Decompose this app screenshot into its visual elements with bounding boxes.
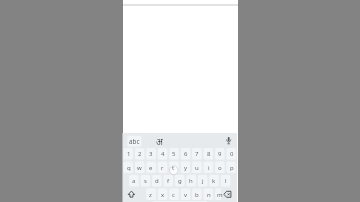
staticText: m xyxy=(217,191,223,199)
staticText: v xyxy=(184,191,188,199)
staticText: h xyxy=(189,177,193,185)
button[interactable] xyxy=(123,189,138,200)
staticText: abc xyxy=(129,137,140,146)
staticText: g xyxy=(178,177,182,185)
button[interactable]: h xyxy=(185,175,196,186)
button[interactable]: p xyxy=(226,162,237,173)
staticText: l xyxy=(225,177,227,185)
button[interactable]: l xyxy=(220,175,231,186)
button[interactable]: z xyxy=(145,189,156,200)
staticText: f xyxy=(167,177,170,185)
staticText: e xyxy=(149,164,153,172)
button[interactable]: y xyxy=(180,162,191,173)
button[interactable]: w xyxy=(134,162,145,173)
staticText: j xyxy=(202,177,204,185)
staticText: y xyxy=(184,164,188,172)
button[interactable]: b xyxy=(191,189,202,200)
button[interactable]: अ xyxy=(152,134,166,147)
button[interactable]: s xyxy=(140,175,151,186)
button[interactable]: f xyxy=(163,175,174,186)
button[interactable]: abc xyxy=(127,136,141,147)
button[interactable]: o xyxy=(214,162,225,173)
button[interactable]: 3 xyxy=(145,148,156,159)
staticText: अ xyxy=(156,135,163,147)
staticText: s xyxy=(144,177,147,185)
button[interactable]: 7 xyxy=(191,148,202,159)
staticText: 7 xyxy=(195,150,199,158)
staticText: i xyxy=(208,164,210,172)
button[interactable]: g xyxy=(174,175,185,186)
button[interactable]: e xyxy=(145,162,156,173)
button[interactable]: 6 xyxy=(180,148,191,159)
button[interactable]: 5 xyxy=(168,148,179,159)
staticText: b xyxy=(195,191,199,199)
button[interactable]: 9 xyxy=(214,148,225,159)
staticText: 8 xyxy=(207,150,211,158)
staticText: t xyxy=(172,164,175,172)
button[interactable]: q xyxy=(123,162,134,173)
staticText: a xyxy=(132,177,136,185)
staticText: x xyxy=(161,191,165,199)
button[interactable]: 0 xyxy=(226,148,237,159)
staticText: o xyxy=(218,164,222,172)
button[interactable]: 8 xyxy=(203,148,214,159)
staticText: k xyxy=(212,177,216,185)
button[interactable]: k xyxy=(208,175,219,186)
button[interactable]: d xyxy=(151,175,162,186)
button[interactable]: v xyxy=(180,189,191,200)
button[interactable]: m xyxy=(214,189,225,200)
button[interactable]: n xyxy=(203,189,214,200)
staticText: q xyxy=(127,164,131,172)
button[interactable]: c xyxy=(168,189,179,200)
staticText: p xyxy=(230,164,234,172)
staticText: 3 xyxy=(149,150,153,158)
button[interactable]: i xyxy=(203,162,214,173)
staticText: n xyxy=(207,191,211,199)
staticText: 5 xyxy=(172,150,176,158)
button[interactable]: a xyxy=(128,175,139,186)
staticText: w xyxy=(137,164,142,172)
staticText: u xyxy=(195,164,199,172)
staticText: 1 xyxy=(127,150,131,158)
button[interactable]: 1 xyxy=(123,148,134,159)
staticText: 4 xyxy=(161,150,165,158)
staticText: 0 xyxy=(230,150,234,158)
button[interactable]: x xyxy=(157,189,168,200)
button[interactable]: t xyxy=(168,162,179,173)
button[interactable]: r xyxy=(157,162,168,173)
button[interactable]: 4 xyxy=(157,148,168,159)
staticText: z xyxy=(149,191,152,199)
staticText: 9 xyxy=(218,150,222,158)
button[interactable]: j xyxy=(197,175,208,186)
staticText: c xyxy=(172,191,175,199)
staticText: 6 xyxy=(184,150,188,158)
staticText: 2 xyxy=(138,150,142,158)
staticText: d xyxy=(155,177,159,185)
button[interactable]: 2 xyxy=(134,148,145,159)
button[interactable] xyxy=(222,134,235,147)
staticText: r xyxy=(161,164,164,172)
button[interactable] xyxy=(221,189,236,200)
button[interactable]: u xyxy=(191,162,202,173)
